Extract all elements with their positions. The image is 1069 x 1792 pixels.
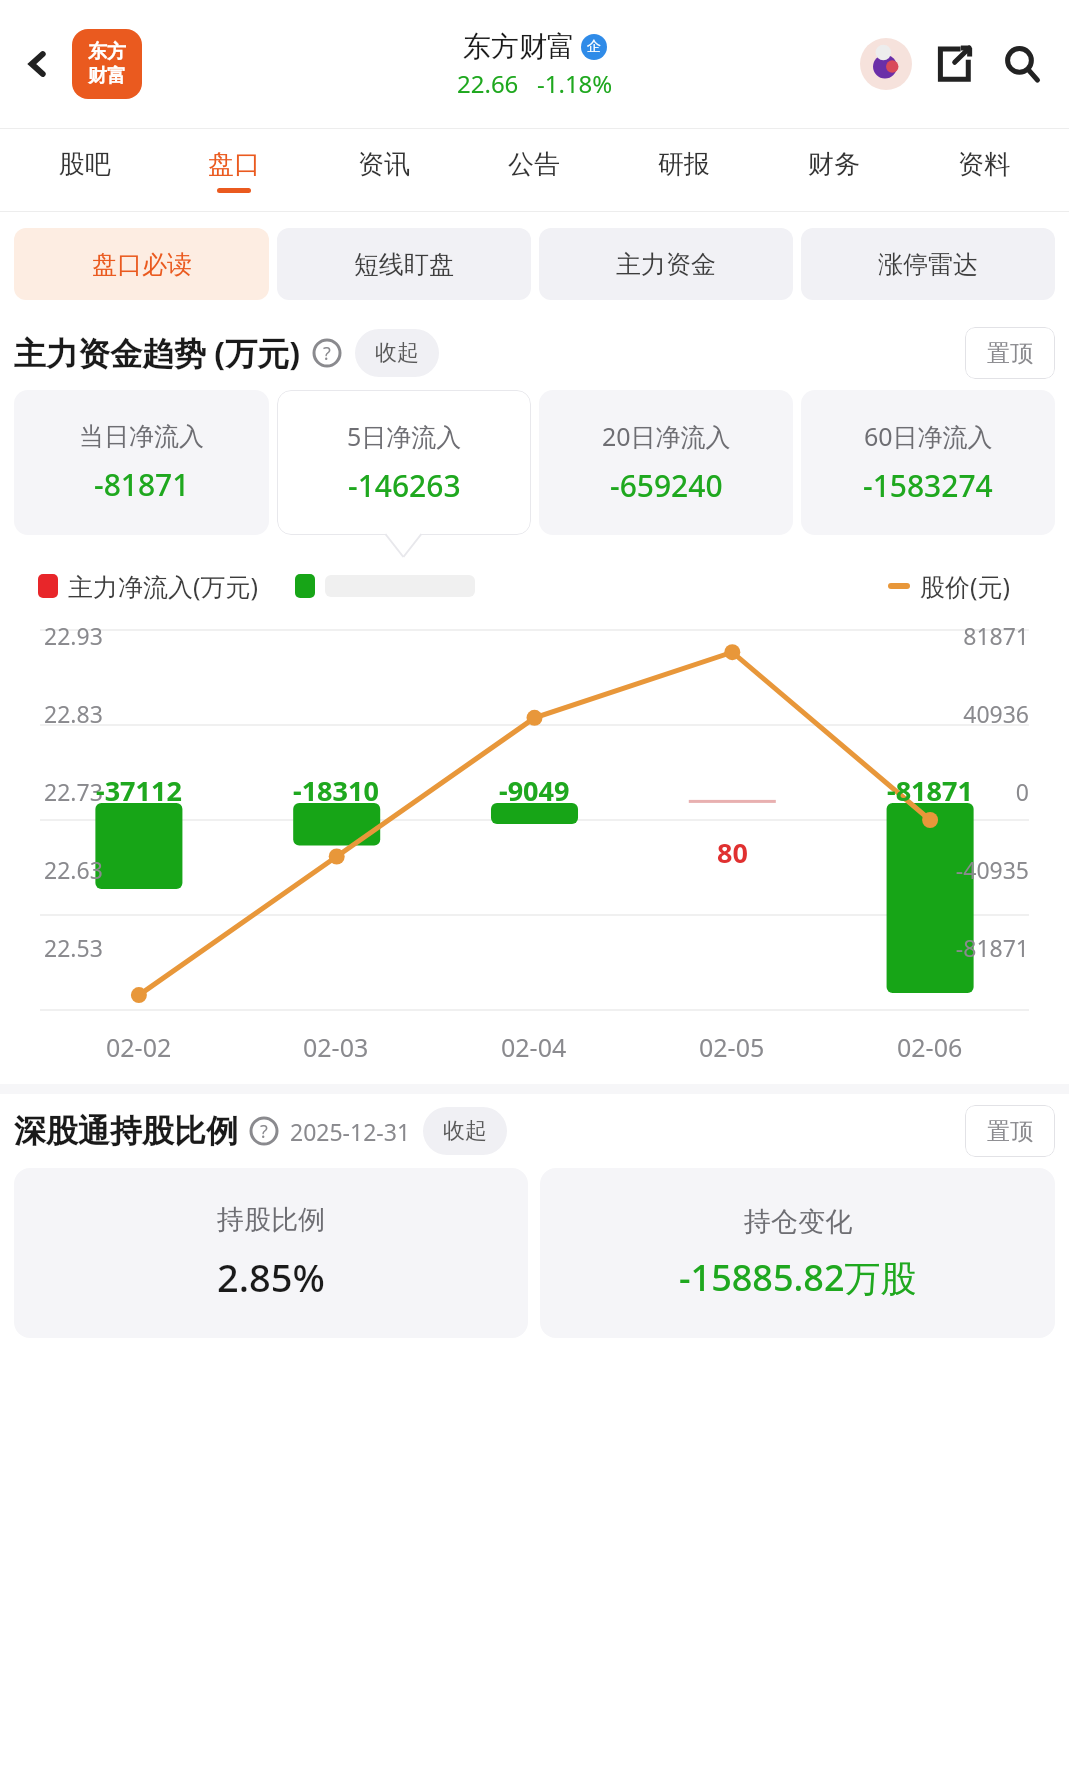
button[interactable]: Avatar bbox=[857, 35, 915, 93]
staticText: 主力净流入(万元) bbox=[68, 569, 259, 603]
staticText: -146263 bbox=[348, 465, 461, 506]
staticText: 持仓变化 bbox=[744, 1205, 852, 1239]
staticText: 22.66 bbox=[457, 67, 519, 100]
staticText: 研报 bbox=[658, 148, 710, 181]
button[interactable]: Share bbox=[925, 35, 983, 93]
button[interactable]: 资料 bbox=[909, 129, 1059, 211]
staticText: 5日净流入 bbox=[347, 419, 462, 453]
staticText: 22.53 bbox=[44, 932, 103, 963]
staticText: -1583274 bbox=[863, 465, 993, 506]
staticText: -37112 bbox=[96, 772, 182, 809]
staticText: ? bbox=[323, 341, 331, 366]
button[interactable]: 涨停雷达 bbox=[801, 228, 1055, 300]
staticText: -40935 bbox=[955, 854, 1029, 885]
button[interactable]: 股吧 bbox=[10, 129, 159, 211]
button[interactable]: 20日净流入 bbox=[539, 390, 793, 535]
staticText: 收起 bbox=[443, 1117, 487, 1145]
button[interactable]: 研报 bbox=[609, 129, 759, 211]
button[interactable]: 置顶 bbox=[987, 1105, 1033, 1157]
staticText: 置顶 bbox=[987, 339, 1033, 368]
staticText: 财务 bbox=[808, 148, 860, 181]
staticText: 公告 bbox=[508, 148, 560, 181]
staticText: 盘口 bbox=[208, 148, 260, 181]
staticText: 持股比例 bbox=[217, 1203, 325, 1237]
staticText: 02-02 bbox=[106, 1030, 172, 1064]
staticText: 股价(元) bbox=[920, 569, 1011, 603]
staticText: 22.83 bbox=[44, 698, 103, 729]
button[interactable]: 持股比例 bbox=[14, 1168, 528, 1338]
staticText: 企 bbox=[587, 38, 601, 56]
button[interactable]: 盘口 bbox=[159, 129, 309, 211]
staticText: 盘口必读 bbox=[92, 249, 192, 280]
staticText: 资料 bbox=[958, 148, 1010, 181]
staticText: 0 bbox=[1015, 776, 1029, 807]
button[interactable]: 持仓变化 bbox=[540, 1168, 1055, 1338]
staticText: 02-05 bbox=[699, 1030, 765, 1064]
button[interactable]: 当日净流入 bbox=[14, 390, 269, 535]
staticText: 22.93 bbox=[44, 620, 103, 651]
staticText: 当日净流入 bbox=[79, 421, 204, 452]
staticText: -81871 bbox=[955, 932, 1029, 963]
staticText: 东方财富 bbox=[463, 29, 575, 64]
staticText: -1.18% bbox=[537, 67, 613, 100]
staticText: 资讯 bbox=[358, 148, 410, 181]
button[interactable]: App logo bbox=[72, 29, 142, 99]
staticText: -81871 bbox=[887, 772, 973, 809]
button[interactable]: 5日净流入 bbox=[277, 390, 531, 535]
staticText: 20日净流入 bbox=[602, 419, 731, 453]
staticText: 财富 bbox=[88, 64, 126, 88]
staticText: 40936 bbox=[963, 698, 1029, 729]
staticText: 2025-12-31 bbox=[290, 1116, 411, 1147]
staticText: -81871 bbox=[94, 464, 190, 505]
button[interactable]: 财务 bbox=[759, 129, 909, 211]
button[interactable]: 置顶 bbox=[987, 327, 1033, 379]
staticText: -9049 bbox=[499, 772, 570, 809]
staticText: 主力资金趋势 (万元) bbox=[14, 331, 301, 375]
button[interactable]: 资讯 bbox=[309, 129, 459, 211]
button[interactable]: 盘口必读 bbox=[14, 228, 269, 300]
staticText: 收起 bbox=[375, 339, 419, 367]
staticText: 02-04 bbox=[501, 1030, 567, 1064]
staticText: 短线盯盘 bbox=[354, 249, 454, 280]
staticText: ? bbox=[260, 1119, 268, 1144]
staticText: 02-03 bbox=[303, 1030, 369, 1064]
staticText: 股吧 bbox=[59, 148, 111, 181]
staticText: 涨停雷达 bbox=[878, 249, 978, 280]
button[interactable]: 收起 bbox=[443, 1107, 487, 1155]
button[interactable]: Back bbox=[10, 36, 66, 92]
staticText: 置顶 bbox=[987, 1117, 1033, 1146]
button[interactable]: Help bbox=[248, 1115, 280, 1147]
staticText: -15885.82万股 bbox=[679, 1253, 917, 1302]
button[interactable]: 公告 bbox=[459, 129, 609, 211]
button[interactable]: 主力资金 bbox=[539, 228, 793, 300]
staticText: 深股通持股比例 bbox=[14, 1111, 238, 1151]
staticText: 22.63 bbox=[44, 854, 103, 885]
staticText: 主力资金 bbox=[616, 249, 716, 280]
button[interactable]: Search bbox=[993, 35, 1051, 93]
button[interactable]: Help bbox=[311, 337, 343, 369]
staticText: 02-06 bbox=[897, 1030, 963, 1064]
button[interactable]: 收起 bbox=[375, 329, 419, 377]
staticText: 80 bbox=[717, 834, 748, 871]
button[interactable]: 短线盯盘 bbox=[277, 228, 531, 300]
staticText: 81871 bbox=[963, 620, 1029, 651]
button[interactable]: 60日净流入 bbox=[801, 390, 1055, 535]
staticText: 2.85% bbox=[217, 1251, 325, 1303]
staticText: -18310 bbox=[293, 772, 379, 809]
staticText: 东方 bbox=[88, 40, 126, 64]
staticText: -659240 bbox=[610, 465, 723, 506]
staticText: 22.73 bbox=[44, 776, 103, 807]
staticText: 60日净流入 bbox=[864, 419, 993, 453]
